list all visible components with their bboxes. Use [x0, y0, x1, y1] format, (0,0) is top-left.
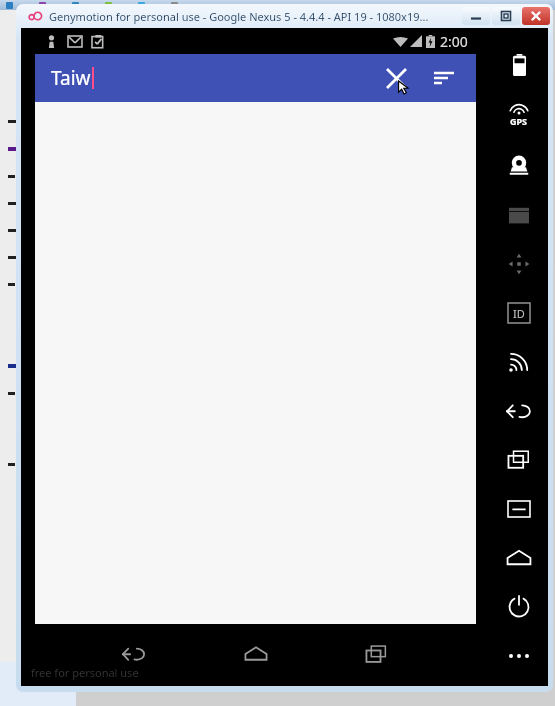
button[interactable]: Back [490, 386, 548, 435]
staticText: 2:00 [440, 32, 468, 51]
button[interactable]: Pixel perfect [490, 239, 548, 288]
button[interactable]: Clear search [378, 60, 414, 96]
button[interactable]: Home [490, 533, 548, 582]
button[interactable]: Home [234, 632, 278, 676]
button[interactable]: More [490, 631, 548, 680]
button[interactable]: Restore [492, 7, 520, 25]
button[interactable]: Menu [490, 484, 548, 533]
button[interactable]: Battery [490, 40, 548, 90]
button[interactable]: Recents [355, 632, 399, 676]
staticText: free for personal use [31, 665, 139, 680]
staticText: ID [513, 306, 525, 321]
button[interactable]: Network [490, 337, 548, 386]
staticText: GPS [510, 115, 528, 127]
button[interactable]: Recents [490, 435, 548, 484]
button[interactable]: Camera [490, 140, 548, 190]
staticText: Genymotion for personal use - Google Nex… [49, 9, 429, 24]
staticText: Taiw [51, 65, 91, 91]
button[interactable]: Power [490, 582, 548, 631]
button[interactable]: Back [112, 632, 156, 676]
button[interactable]: Video recorder [490, 190, 548, 239]
button[interactable]: GPS [490, 90, 548, 140]
button[interactable]: Minimize [462, 7, 490, 25]
button[interactable]: Close [522, 7, 550, 25]
button[interactable]: Sort [426, 60, 462, 96]
button[interactable]: Identifiers [490, 288, 548, 337]
